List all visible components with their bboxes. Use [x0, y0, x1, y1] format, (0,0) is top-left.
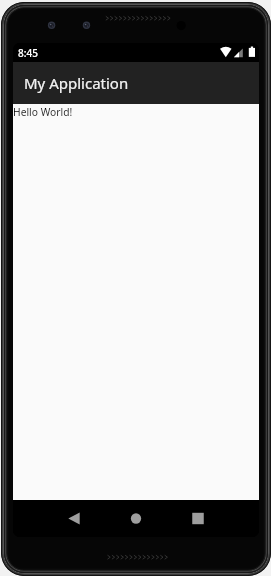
- staticText: My Application: [24, 73, 129, 93]
- button[interactable]: Recent apps: [167, 500, 229, 537]
- staticText: Hello World!: [13, 105, 73, 119]
- button[interactable]: My Application: [13, 62, 259, 104]
- button[interactable]: Back: [43, 500, 105, 537]
- button[interactable]: Home: [105, 500, 167, 537]
- staticText: 8:45: [18, 46, 38, 60]
